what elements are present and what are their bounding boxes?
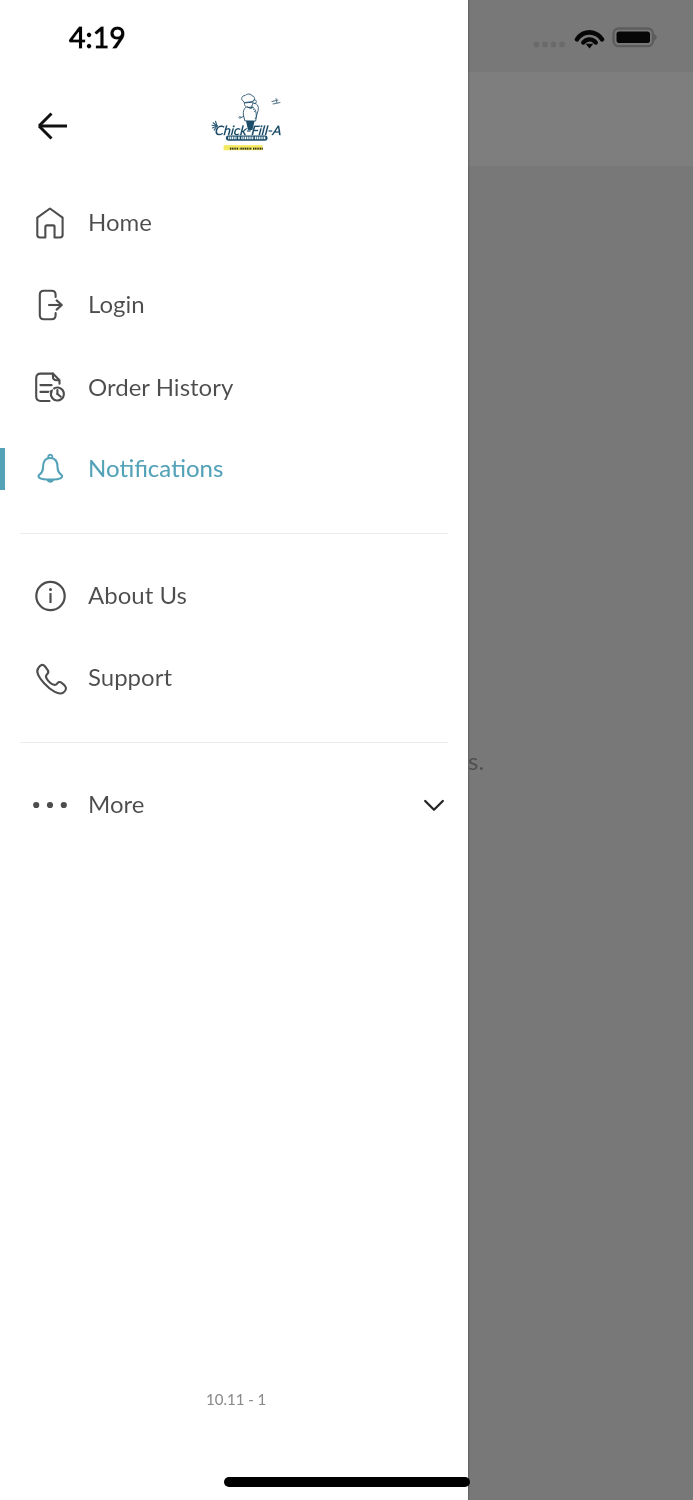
button[interactable]: Home [0,182,468,264]
staticText: Home [88,207,152,236]
staticText: 10.11 - 1 [206,1390,267,1408]
staticText: Order History [88,372,234,401]
staticText: Notifications [88,453,224,482]
staticText: More [88,789,145,818]
button[interactable]: Notifications [0,428,468,510]
staticText: Support [88,662,173,691]
button[interactable]: Order History [0,347,468,429]
button[interactable]: About Us [0,555,468,637]
button[interactable]: Login [0,264,468,346]
staticText: s. [468,746,485,775]
staticText: Chick-Fill-A [214,122,281,138]
staticText: About Us [88,580,187,609]
button[interactable]: More [0,764,468,846]
button[interactable]: Back [21,95,83,157]
staticText: Login [88,289,145,318]
staticText: 4:19 [69,20,126,54]
button[interactable]: Support [0,637,468,719]
